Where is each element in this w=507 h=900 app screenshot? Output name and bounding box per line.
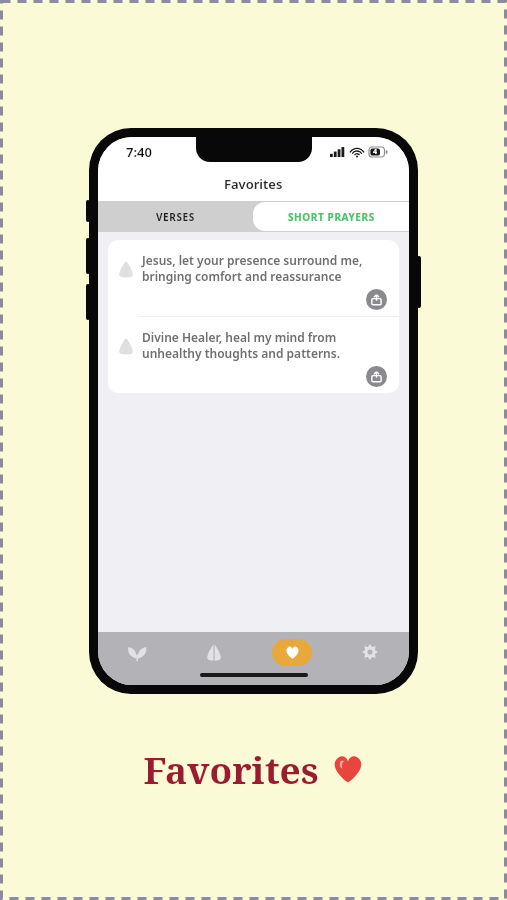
button[interactable]: Share xyxy=(366,366,387,387)
button[interactable]: Settings xyxy=(331,632,409,672)
button[interactable]: Share xyxy=(366,289,387,310)
button[interactable]: SHORT PRAYERS xyxy=(253,202,409,231)
button[interactable]: VERSES xyxy=(98,201,253,232)
staticText: VERSES xyxy=(156,210,195,224)
staticText: SHORT PRAYERS xyxy=(288,210,375,224)
staticText: 4 xyxy=(373,147,378,157)
staticText: Divine Healer, heal my mind from unhealt… xyxy=(142,329,387,362)
button[interactable]: Divine Healer, heal my mind from unhealt… xyxy=(108,317,399,393)
staticText: Jesus, let your presence surround me, br… xyxy=(142,252,387,285)
staticText: Favorites xyxy=(143,744,319,794)
button[interactable]: Jesus, let your presence surround me, br… xyxy=(108,240,399,316)
staticText: 7:40 xyxy=(126,143,152,161)
button[interactable]: Prayers xyxy=(175,632,253,672)
button[interactable]: Growth xyxy=(98,632,175,672)
button[interactable]: Favorites xyxy=(253,632,331,672)
staticText: Favorites xyxy=(224,175,283,193)
